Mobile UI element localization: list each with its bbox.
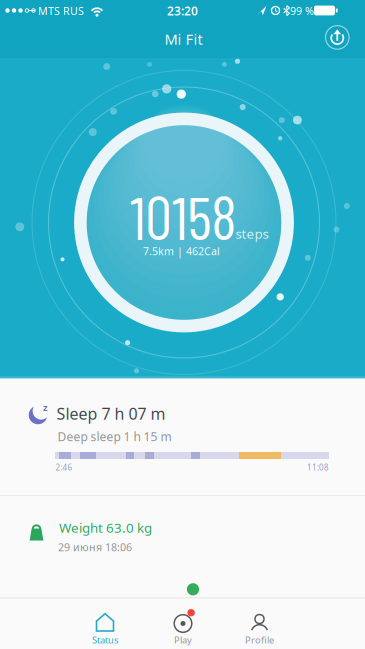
staticText: Play xyxy=(174,634,192,646)
staticText: Mi Fit xyxy=(164,29,202,49)
button[interactable]: Weight 63.0 kg xyxy=(0,496,365,576)
staticText: 11:08 xyxy=(307,462,329,473)
staticText: Deep sleep 1 h 15 m xyxy=(57,428,171,444)
staticText: z xyxy=(43,401,48,414)
button[interactable]: Profile xyxy=(221,598,297,648)
staticText: Status xyxy=(92,634,118,646)
button[interactable]: z xyxy=(0,378,365,495)
staticText: Sleep 7 h 07 m xyxy=(56,403,165,424)
staticText: 2:46 xyxy=(55,462,72,473)
staticText: 99 % xyxy=(290,4,314,18)
staticText: 10158 xyxy=(130,180,236,252)
staticText: Profile xyxy=(245,634,274,646)
staticText: 7.5km | 462Cal xyxy=(143,244,220,258)
button[interactable] xyxy=(317,17,357,57)
staticText: MTS RUS xyxy=(38,4,84,18)
staticText: 23:20 xyxy=(167,3,198,19)
staticText: Weight 63.0 kg xyxy=(59,519,152,536)
button[interactable]: Play xyxy=(145,598,221,648)
button[interactable]: Status xyxy=(67,598,143,648)
staticText: steps xyxy=(235,225,268,242)
staticText: 29 июня 18:06 xyxy=(58,540,132,554)
